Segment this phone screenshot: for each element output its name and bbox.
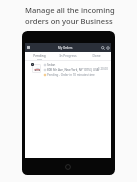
staticText: Manage all the incoming (25, 5, 115, 15)
staticText: Pending (33, 54, 46, 58)
button[interactable]: Sedan (25, 61, 111, 77)
staticText: Done (92, 54, 101, 58)
staticText: My Orders (58, 46, 73, 50)
button[interactable]: Done (82, 52, 111, 60)
button[interactable]: Search (100, 45, 105, 50)
button[interactable]: Pending (25, 52, 53, 60)
staticText: In Progress (59, 54, 77, 58)
staticText: Sedan (47, 63, 56, 67)
button[interactable]: Notifications (105, 45, 110, 50)
staticText: $ 20.00 (98, 67, 108, 71)
button[interactable]: Menu (26, 45, 31, 50)
staticText: orders on your Business (25, 16, 113, 26)
button[interactable]: In Progress (53, 52, 82, 60)
staticText: Pending - Order in 10 minutes time (47, 73, 95, 77)
staticText: 808 5th Ave, New York, NY 10153, USA (47, 68, 99, 72)
